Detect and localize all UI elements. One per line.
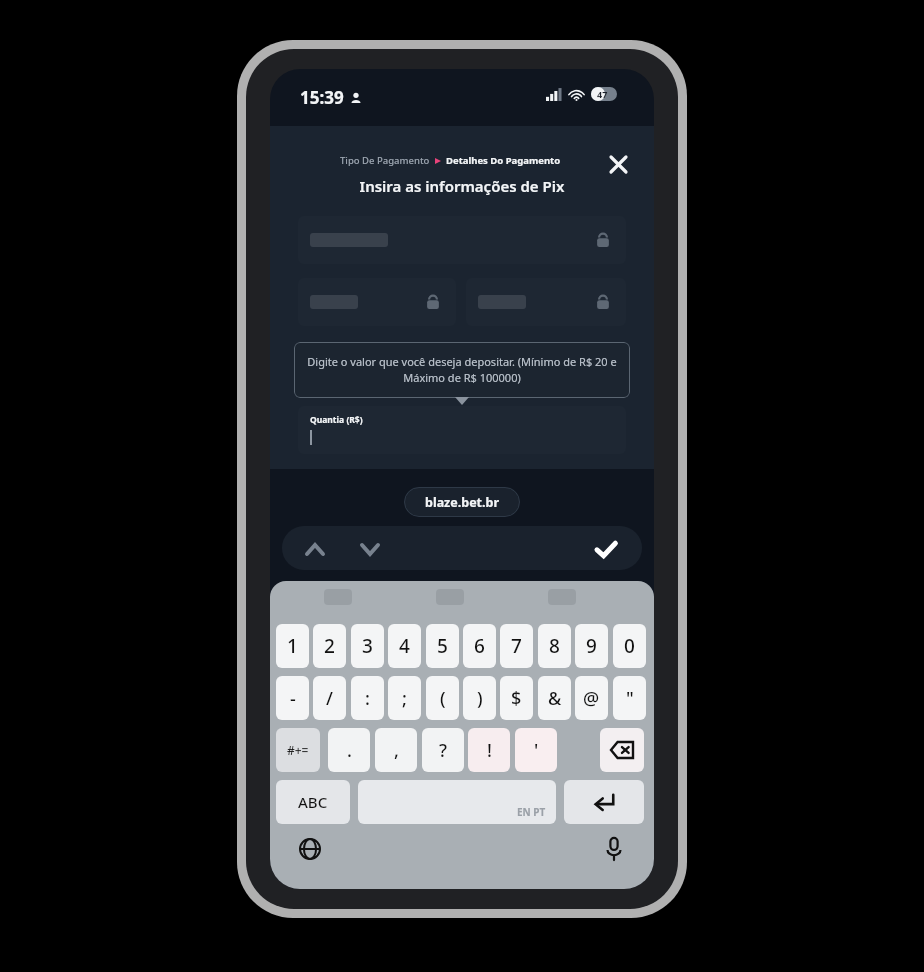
staticText: 3 bbox=[362, 633, 373, 659]
staticText: blaze.bet.br bbox=[425, 494, 500, 511]
button[interactable]: " bbox=[613, 676, 646, 720]
button[interactable] bbox=[298, 216, 626, 264]
staticText: ) bbox=[477, 686, 483, 711]
staticText: 6 bbox=[474, 633, 485, 659]
button[interactable]: Próximo bbox=[357, 536, 383, 562]
button[interactable]: ) bbox=[463, 676, 496, 720]
button[interactable]: 8 bbox=[538, 624, 571, 668]
button[interactable]: ' bbox=[515, 728, 557, 772]
staticText: Detalhes Do Pagamento bbox=[446, 154, 561, 167]
staticText: Digite o valor que você deseja depositar… bbox=[306, 354, 618, 386]
button[interactable]: / bbox=[313, 676, 346, 720]
button[interactable]: Ditado por voz bbox=[596, 831, 632, 867]
staticText: " bbox=[626, 686, 634, 711]
staticText: ' bbox=[534, 738, 539, 763]
staticText: . bbox=[347, 738, 352, 763]
staticText: Tipo De Pagamento bbox=[340, 154, 430, 167]
staticText: 8 bbox=[549, 633, 560, 659]
staticText: 4 bbox=[399, 633, 410, 659]
staticText: $ bbox=[511, 686, 522, 711]
staticText: 2 bbox=[324, 633, 335, 659]
button[interactable]: . bbox=[328, 728, 370, 772]
button[interactable]: ( bbox=[426, 676, 459, 720]
staticText: @ bbox=[583, 686, 600, 711]
button[interactable] bbox=[298, 278, 456, 326]
button[interactable]: ABC bbox=[276, 780, 350, 824]
staticText: ? bbox=[439, 738, 448, 763]
button[interactable]: Anterior bbox=[302, 536, 328, 562]
staticText: & bbox=[548, 686, 562, 711]
staticText: 0 bbox=[624, 633, 635, 659]
staticText: ; bbox=[402, 686, 407, 711]
button[interactable]: $ bbox=[500, 676, 533, 720]
button[interactable]: ; bbox=[388, 676, 421, 720]
staticText: 9 bbox=[586, 633, 597, 659]
staticText: ! bbox=[487, 738, 492, 763]
button[interactable]: Mudar idioma bbox=[292, 831, 328, 867]
button[interactable]: 0 bbox=[613, 624, 646, 668]
staticText: 1 bbox=[287, 633, 298, 659]
staticText: 47 bbox=[597, 88, 608, 100]
button[interactable]: 5 bbox=[426, 624, 459, 668]
button[interactable]: Espaço bbox=[358, 780, 556, 824]
button[interactable]: @ bbox=[575, 676, 608, 720]
button[interactable]: #+= bbox=[276, 728, 320, 772]
button[interactable]: 9 bbox=[575, 624, 608, 668]
button[interactable]: ? bbox=[422, 728, 464, 772]
button[interactable]: Apagar bbox=[600, 728, 644, 772]
button[interactable]: : bbox=[351, 676, 384, 720]
staticText: #+= bbox=[287, 742, 309, 758]
staticText: Quantia (R$) bbox=[310, 414, 363, 426]
button[interactable]: 6 bbox=[463, 624, 496, 668]
staticText: 5 bbox=[437, 633, 448, 659]
button[interactable] bbox=[466, 278, 626, 326]
button[interactable]: & bbox=[538, 676, 571, 720]
staticText: : bbox=[365, 686, 370, 711]
button[interactable]: ! bbox=[468, 728, 510, 772]
button[interactable]: 1 bbox=[276, 624, 309, 668]
staticText: , bbox=[394, 738, 399, 763]
staticText: ABC bbox=[298, 792, 328, 812]
staticText: ( bbox=[440, 686, 446, 711]
button[interactable]: Concluído bbox=[592, 535, 620, 563]
button[interactable]: blaze.bet.br bbox=[404, 487, 520, 517]
button[interactable]: , bbox=[375, 728, 417, 772]
staticText: - bbox=[290, 686, 296, 711]
button[interactable]: Fechar bbox=[602, 148, 634, 180]
button[interactable]: 3 bbox=[351, 624, 384, 668]
button[interactable]: Enter bbox=[564, 780, 644, 824]
button[interactable]: Quantia (R$) bbox=[298, 406, 626, 454]
staticText: 7 bbox=[511, 633, 522, 659]
staticText: 15:39 bbox=[300, 86, 344, 109]
staticText: Insira as informações de Pix bbox=[270, 176, 654, 196]
button[interactable]: 4 bbox=[388, 624, 421, 668]
button[interactable]: 7 bbox=[500, 624, 533, 668]
staticText: / bbox=[326, 686, 333, 711]
staticText: EN PT bbox=[517, 805, 546, 819]
button[interactable]: 2 bbox=[313, 624, 346, 668]
button[interactable]: - bbox=[276, 676, 309, 720]
